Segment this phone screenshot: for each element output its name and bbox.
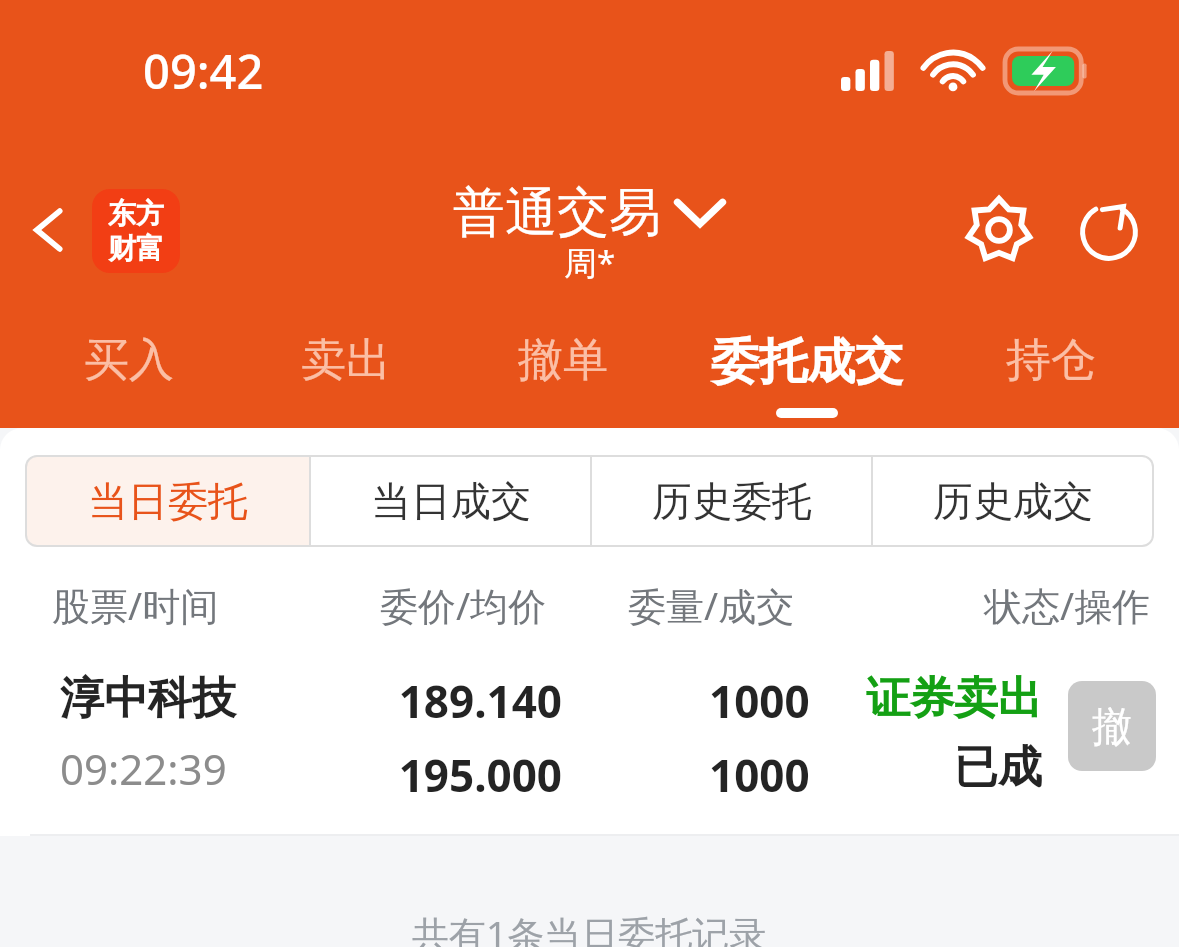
button[interactable]: 当日成交 (311, 457, 590, 545)
staticText: 委价/均价 (380, 579, 547, 631)
staticText: 持仓 (1006, 332, 1096, 389)
staticText: 09:42 (143, 39, 264, 103)
button[interactable]: 东方财富 (92, 189, 180, 273)
button[interactable]: 卖出 (237, 310, 454, 428)
staticText: 淳中科技 (60, 671, 236, 726)
staticText: 证券卖出 (866, 671, 1042, 726)
staticText: 已成 (954, 740, 1042, 795)
button[interactable]: 委托成交 (671, 310, 942, 428)
staticText: 卖出 (301, 332, 391, 389)
button[interactable]: 历史委托 (592, 457, 871, 545)
staticText: 195.000 (398, 745, 562, 805)
staticText: 周* (564, 240, 616, 285)
staticText: 历史委托 (652, 476, 812, 526)
button[interactable]: 撤 (1068, 681, 1156, 771)
button[interactable]: 持仓 (942, 310, 1159, 428)
button[interactable]: Refresh (1069, 190, 1149, 270)
button[interactable]: 淳中科技 (0, 665, 1179, 825)
staticText: 189.140 (398, 671, 562, 731)
staticText: 1000 (709, 671, 810, 731)
staticText: 委量/成交 (628, 579, 795, 631)
staticText: 财富 (108, 231, 164, 266)
button[interactable]: 撤单 (454, 310, 671, 428)
staticText: 股票/时间 (52, 579, 219, 631)
staticText: 普通交易 (453, 180, 661, 246)
button[interactable]: 历史成交 (873, 457, 1152, 545)
staticText: 09:22:39 (60, 740, 227, 797)
button[interactable]: Settings (959, 190, 1039, 270)
staticText: 共有1条当日委托记录 (412, 908, 767, 947)
staticText: 撤 (1092, 701, 1132, 751)
staticText: 当日委托 (88, 476, 248, 526)
staticText: 东方 (108, 196, 164, 231)
staticText: 1000 (709, 745, 810, 805)
staticText: 委托成交 (711, 332, 903, 392)
staticText: 状态/操作 (984, 579, 1151, 631)
button[interactable]: 买入 (20, 310, 237, 428)
staticText: 买入 (84, 332, 174, 389)
button[interactable]: 当日委托 (27, 457, 309, 545)
button[interactable]: 普通交易 (453, 180, 727, 246)
staticText: 历史成交 (933, 476, 1093, 526)
staticText: 撤单 (518, 332, 608, 389)
button[interactable]: Back (14, 194, 86, 266)
staticText: 当日成交 (371, 476, 531, 526)
